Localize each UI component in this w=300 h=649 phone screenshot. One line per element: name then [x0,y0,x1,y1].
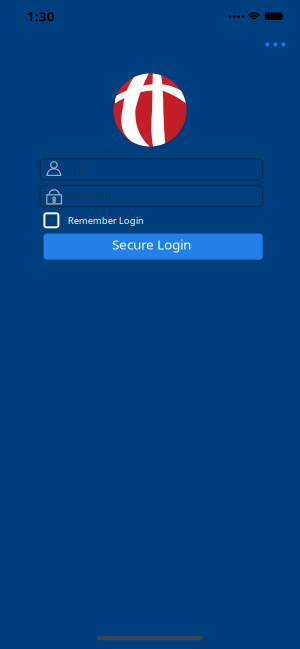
staticText: User [66,162,89,176]
button[interactable]: Secure Login [44,234,263,260]
button[interactable]: Password [40,185,263,207]
button[interactable]: Remember Login [44,211,142,229]
button[interactable]: More options [260,36,290,52]
button[interactable]: User [40,159,263,180]
staticText: Password [66,189,113,203]
staticText: 1:30 [27,7,55,25]
staticText: Remember Login [68,214,144,226]
staticText: Secure Login [112,235,191,253]
